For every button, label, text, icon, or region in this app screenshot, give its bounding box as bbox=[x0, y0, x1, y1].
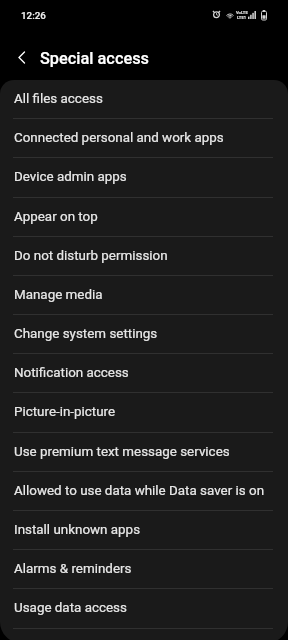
staticText: Appear on top bbox=[14, 209, 98, 225]
button[interactable]: Usage data access bbox=[0, 589, 288, 628]
button[interactable]: Picture-in-picture bbox=[0, 393, 288, 432]
button[interactable]: Use premium text message services bbox=[0, 433, 288, 472]
button[interactable]: Appear on top bbox=[0, 198, 288, 237]
staticText: Change system settings bbox=[14, 326, 158, 342]
button[interactable]: Install unknown apps bbox=[0, 511, 288, 550]
button[interactable]: Device admin apps bbox=[0, 158, 288, 197]
staticText: Notification access bbox=[14, 365, 129, 381]
staticText: Do not disturb permission bbox=[14, 248, 168, 264]
button[interactable]: Allowed to use data while Data saver is … bbox=[0, 472, 288, 511]
button[interactable]: Notification access bbox=[0, 354, 288, 393]
staticText: VoLTE bbox=[236, 10, 248, 15]
button[interactable]: All files access bbox=[0, 80, 288, 119]
staticText: Install unknown apps bbox=[14, 522, 141, 538]
button[interactable]: Manage media bbox=[0, 276, 288, 315]
button[interactable]: Connected personal and work apps bbox=[0, 119, 288, 158]
staticText: Special access bbox=[40, 49, 150, 68]
staticText: Usage data access bbox=[14, 600, 127, 616]
staticText: Manage media bbox=[14, 287, 103, 303]
button[interactable]: Alarms & reminders bbox=[0, 550, 288, 589]
button[interactable]: Change system settings bbox=[0, 315, 288, 354]
staticText: 12:26 bbox=[21, 10, 46, 21]
staticText: Use premium text message services bbox=[14, 444, 230, 460]
staticText: Picture-in-picture bbox=[14, 404, 116, 420]
staticText: Alarms & reminders bbox=[14, 561, 132, 577]
staticText: Allowed to use data while Data saver is … bbox=[14, 483, 265, 499]
staticText: All files access bbox=[14, 91, 103, 107]
button[interactable]: Do not disturb permission bbox=[0, 237, 288, 276]
staticText: Device admin apps bbox=[14, 169, 127, 185]
staticText: Connected personal and work apps bbox=[14, 130, 224, 146]
button[interactable]: Back bbox=[7, 43, 35, 71]
staticText: LTE1 bbox=[237, 15, 247, 20]
